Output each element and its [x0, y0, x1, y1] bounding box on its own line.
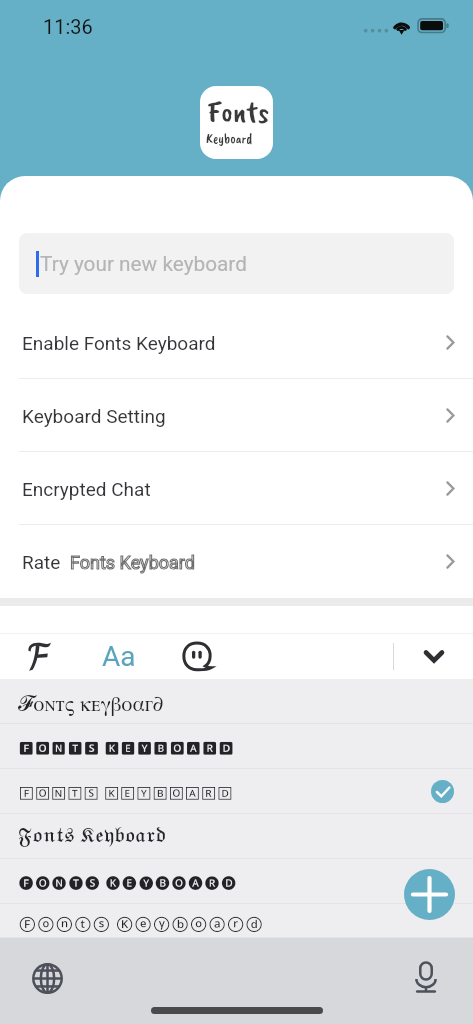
button[interactable]: 🄵🄾🄽🅃🅂 🄺🄴🅈🄱🄾🄰🅁🄳	[0, 769, 473, 814]
staticText: 🅕🅞🅝🅣🅢 🅚🅔🅨🅑🅞🅐🅡🅓	[18, 865, 237, 899]
button[interactable]: 🅕🅞🅝🅣🅢 🅚🅔🅨🅑🅞🅐🅡🅓	[0, 859, 473, 904]
button[interactable]: Text style	[99, 637, 138, 676]
button[interactable]: Try your new keyboard	[19, 233, 454, 294]
button[interactable]: Change keyboard language	[22, 953, 73, 1004]
staticText: Keyboard Setting	[22, 405, 166, 427]
button[interactable]: Voice input	[400, 951, 451, 1002]
staticText: Ⓕⓞⓝⓣⓢ Ⓚⓔⓨⓑⓞⓐⓡⓓ	[18, 904, 264, 938]
staticText: Encrypted Chat	[22, 478, 151, 500]
staticText: Try your new keyboard	[40, 252, 247, 276]
staticText: 11:36	[43, 15, 93, 38]
button[interactable]: Enable Fonts Keyboard	[0, 306, 473, 379]
staticText: 🅵🅾🅽🆃🆂 🅺🅴🆈🅱🅾🅰🆁🅳	[18, 730, 235, 763]
staticText: Fonts	[207, 92, 270, 131]
button[interactable]: 𝓕ᴏɴᴛς κᴇγβᴏαг∂	[0, 679, 473, 724]
button[interactable]: Collapse keyboard	[417, 639, 451, 673]
button[interactable]: Emoji	[180, 639, 214, 673]
button[interactable]: Encrypted Chat	[0, 452, 473, 525]
staticText: 𝔉𝔬𝔫𝔱𝔰 𝔎𝔢𝔶𝔟𝔬𝔞𝔯𝔡	[18, 826, 166, 847]
button[interactable]: 🅵🅾🅽🆃🆂 🅺🅴🆈🅱🅾🅰🆁🅳	[0, 724, 473, 769]
staticText: Rate	[22, 551, 61, 573]
button[interactable]: Ⓕⓞⓝⓣⓢ Ⓚⓔⓨⓑⓞⓐⓡⓓ	[0, 904, 473, 938]
staticText: Fonts Keyboard	[70, 552, 195, 573]
staticText: Enable Fonts Keyboard	[22, 332, 216, 354]
staticText: Keyboard	[206, 130, 253, 148]
button[interactable]: 𝔉𝔬𝔫𝔱𝔰 𝔎𝔢𝔶𝔟𝔬𝔞𝔯𝔡	[0, 814, 473, 859]
button[interactable]: Keyboard Setting	[0, 379, 473, 452]
staticText: 𝓕ᴏɴᴛς κᴇγβᴏαг∂	[18, 680, 164, 723]
staticText: Aa	[102, 640, 136, 673]
staticText: 🄵🄾🄽🅃🅂 🄺🄴🅈🄱🄾🄰🅁🄳	[18, 775, 233, 808]
button[interactable]: Add font	[404, 869, 455, 920]
button[interactable]: Fonts	[21, 638, 58, 675]
button[interactable]: Rate	[0, 525, 473, 598]
